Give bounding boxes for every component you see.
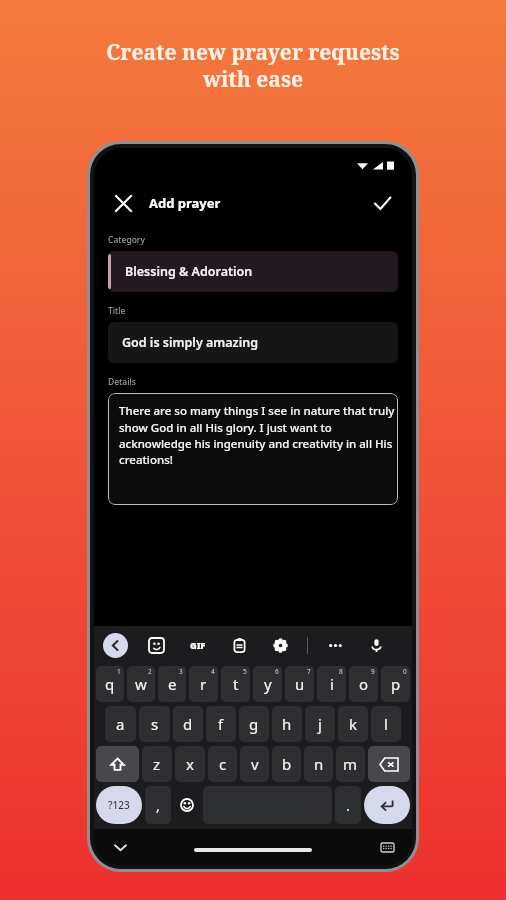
button[interactable]: j — [305, 706, 335, 742]
button[interactable]: u — [285, 666, 314, 702]
button[interactable]: Blessing & Adoration — [108, 251, 398, 292]
staticText: 4 — [211, 667, 215, 676]
button[interactable]: Stickers — [142, 631, 170, 659]
button[interactable]: Close — [108, 188, 138, 218]
button[interactable]: There are so many things I see in nature… — [108, 393, 398, 505]
staticText: f — [218, 714, 224, 734]
staticText: g — [249, 714, 259, 734]
staticText: a — [116, 714, 125, 734]
button[interactable]: Back — [103, 633, 128, 658]
button[interactable]: e — [158, 666, 186, 702]
staticText: w — [135, 674, 147, 694]
button[interactable]: Voice input — [362, 631, 390, 659]
staticText: e — [168, 674, 177, 694]
button[interactable]: Emoji — [174, 786, 200, 824]
button[interactable]: o — [349, 666, 378, 702]
button[interactable]: y — [253, 666, 282, 702]
button[interactable]: Backspace — [368, 746, 410, 782]
button[interactable]: h — [272, 706, 302, 742]
staticText: Title — [108, 305, 126, 317]
button[interactable]: i — [317, 666, 346, 702]
staticText: 7 — [307, 667, 311, 676]
staticText: h — [282, 714, 292, 734]
staticText: Category — [108, 234, 145, 246]
button[interactable]: a — [105, 706, 136, 742]
staticText: v — [251, 754, 259, 774]
staticText: God is simply amazing — [122, 334, 258, 351]
button[interactable]: . — [335, 786, 361, 824]
staticText: q — [105, 674, 115, 694]
staticText: o — [359, 674, 369, 694]
staticText: Create new prayer requests with ease — [106, 38, 400, 93]
button[interactable]: x — [175, 746, 205, 782]
button[interactable]: p — [381, 666, 410, 702]
staticText: GIF — [190, 639, 206, 651]
staticText: s — [151, 714, 159, 734]
button[interactable]: Switch keyboard — [376, 836, 398, 858]
button[interactable]: More options — [321, 631, 349, 659]
button[interactable]: God is simply amazing — [108, 322, 398, 363]
button[interactable]: s — [139, 706, 170, 742]
staticText: 9 — [371, 667, 375, 676]
button[interactable]: , — [145, 786, 171, 824]
button[interactable]: l — [371, 706, 401, 742]
staticText: y — [264, 674, 272, 694]
button[interactable]: Shift — [96, 746, 139, 782]
staticText: d — [183, 714, 193, 734]
button[interactable]: GIF — [184, 631, 212, 659]
button[interactable]: q — [96, 666, 124, 702]
staticText: 8 — [339, 667, 343, 676]
button[interactable]: v — [240, 746, 269, 782]
button[interactable]: t — [221, 666, 250, 702]
staticText: x — [186, 754, 194, 774]
button[interactable]: z — [142, 746, 172, 782]
button[interactable]: k — [338, 706, 368, 742]
button[interactable]: w — [127, 666, 155, 702]
staticText: 0 — [403, 667, 407, 676]
staticText: . — [346, 796, 350, 815]
staticText: u — [295, 674, 305, 694]
staticText: Details — [108, 376, 136, 388]
staticText: i — [330, 674, 334, 694]
button[interactable]: g — [239, 706, 269, 742]
staticText: , — [156, 796, 160, 815]
staticText: c — [219, 754, 227, 774]
button[interactable]: r — [189, 666, 218, 702]
button[interactable]: Clipboard — [225, 631, 253, 659]
button[interactable]: f — [206, 706, 236, 742]
button[interactable]: Hide keyboard — [108, 835, 132, 859]
staticText: m — [343, 754, 358, 774]
button[interactable]: b — [272, 746, 301, 782]
staticText: ?123 — [108, 798, 130, 812]
button[interactable]: Enter — [364, 786, 410, 824]
staticText: 3 — [179, 667, 183, 676]
staticText: r — [200, 674, 207, 694]
staticText: 2 — [148, 667, 152, 676]
button[interactable]: Save prayer — [366, 187, 398, 219]
staticText: n — [314, 754, 324, 774]
staticText: j — [318, 714, 322, 734]
button[interactable]: c — [208, 746, 237, 782]
staticText: t — [233, 674, 239, 694]
staticText: z — [153, 754, 161, 774]
button[interactable]: m — [336, 746, 365, 782]
staticText: 6 — [275, 667, 279, 676]
staticText: 1 — [117, 667, 121, 676]
staticText: 5 — [243, 667, 247, 676]
staticText: l — [384, 714, 388, 734]
button[interactable]: n — [304, 746, 333, 782]
staticText: Add prayer — [149, 194, 221, 212]
staticText: k — [349, 714, 358, 734]
staticText: Blessing & Adoration — [125, 263, 253, 280]
button[interactable]: Settings — [266, 631, 294, 659]
staticText: There are so many things I see in nature… — [119, 403, 398, 467]
staticText: b — [282, 754, 292, 774]
staticText: p — [391, 674, 401, 694]
button[interactable]: d — [173, 706, 203, 742]
button[interactable]: ?123 — [96, 786, 142, 824]
